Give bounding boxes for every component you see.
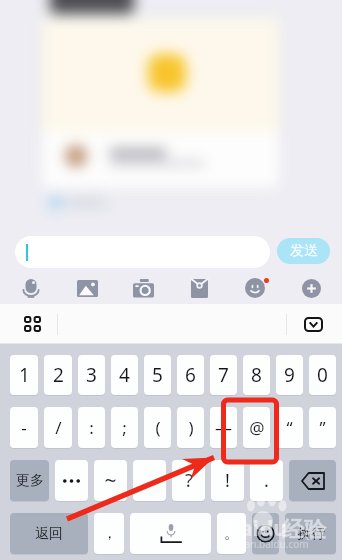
staticText: “ xyxy=(286,416,293,439)
staticText: 经验 xyxy=(282,516,326,544)
button[interactable] xyxy=(15,236,270,268)
button[interactable]: 8 xyxy=(243,355,270,395)
staticText: 返回 xyxy=(35,525,63,543)
button[interactable]: ! xyxy=(211,460,244,501)
staticText: ! xyxy=(225,468,230,493)
staticText: ? xyxy=(185,468,193,493)
staticText: 8 xyxy=(251,362,262,388)
staticText: 5 xyxy=(152,362,163,388)
staticText: : xyxy=(89,416,94,439)
button[interactable]: 7 xyxy=(210,355,237,395)
staticText: 3 xyxy=(86,362,97,388)
staticText: . xyxy=(264,468,269,493)
button[interactable]: More xyxy=(286,272,336,304)
button[interactable]: . xyxy=(250,460,283,501)
staticText: / xyxy=(55,416,62,439)
button[interactable]: 4 xyxy=(111,355,138,395)
button[interactable]: 执行 xyxy=(285,513,336,554)
button[interactable]: ~ xyxy=(94,460,127,501)
button[interactable]: Gift xyxy=(174,272,224,304)
button[interactable]: ( xyxy=(144,407,171,448)
staticText: 。 xyxy=(224,524,239,543)
button[interactable]: 0 xyxy=(309,355,336,395)
button[interactable]: ” xyxy=(309,407,336,448)
button[interactable]: ， xyxy=(94,513,124,554)
button[interactable]: 。 xyxy=(217,513,246,554)
staticText: - xyxy=(21,416,27,439)
button[interactable]: 、 xyxy=(133,460,166,501)
button[interactable]: ) xyxy=(177,407,204,448)
staticText: ” xyxy=(319,416,326,439)
button[interactable]: “ xyxy=(276,407,303,448)
button[interactable]: : xyxy=(78,407,105,448)
staticText: du xyxy=(260,514,287,543)
staticText: ~ xyxy=(104,466,117,495)
staticText: @ xyxy=(249,416,265,439)
staticText: ; xyxy=(122,416,127,439)
staticText: 执行 xyxy=(297,525,325,543)
staticText: 0 xyxy=(317,362,328,388)
staticText: 、 xyxy=(141,470,158,491)
button[interactable]: Space xyxy=(130,513,211,554)
staticText: 6 xyxy=(185,362,196,388)
button[interactable]: Ellipsis xyxy=(55,460,88,501)
staticText: Bai xyxy=(226,514,259,543)
button[interactable]: Emoji xyxy=(230,272,280,304)
staticText: ， xyxy=(102,524,117,543)
button[interactable]: Keyboard panels xyxy=(15,304,50,344)
staticText: ( xyxy=(155,416,161,439)
staticText: 1 xyxy=(19,362,30,388)
button[interactable]: Emoji xyxy=(252,513,279,554)
staticText: 9 xyxy=(284,362,295,388)
button[interactable]: Backspace xyxy=(289,460,336,501)
button[interactable]: / xyxy=(44,407,72,448)
button[interactable]: Hide keyboard xyxy=(293,304,333,344)
staticText: 2 xyxy=(53,362,64,388)
staticText: 发送 xyxy=(290,242,318,260)
button[interactable]: 6 xyxy=(177,355,204,395)
button[interactable]: 5 xyxy=(144,355,171,395)
button[interactable]: ? xyxy=(172,460,205,501)
button[interactable]: Camera xyxy=(118,272,168,304)
button[interactable]: 3 xyxy=(78,355,105,395)
staticText: 7 xyxy=(218,362,229,388)
button[interactable]: ; xyxy=(111,407,138,448)
button[interactable]: Voice xyxy=(6,272,56,304)
button[interactable]: 9 xyxy=(276,355,303,395)
button[interactable]: - xyxy=(10,407,38,448)
button[interactable]: 发送 xyxy=(277,238,330,264)
staticText: 更多 xyxy=(16,472,44,490)
button[interactable]: 2 xyxy=(44,355,72,395)
staticText: jingyan.baidu.com xyxy=(222,537,309,551)
staticText: ) xyxy=(188,416,194,439)
button[interactable]: 返回 xyxy=(10,513,88,554)
button[interactable]: 1 xyxy=(10,355,38,395)
button[interactable]: Photo xyxy=(62,272,112,304)
button[interactable]: @ xyxy=(243,407,270,448)
staticText: 4 xyxy=(119,362,130,388)
button[interactable]: — xyxy=(210,407,237,448)
button[interactable]: 更多 xyxy=(10,460,49,501)
staticText: — xyxy=(215,416,232,439)
